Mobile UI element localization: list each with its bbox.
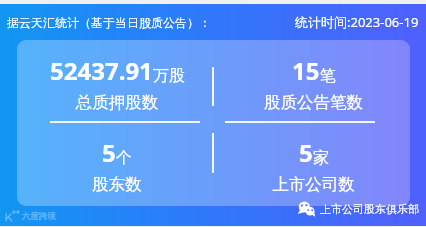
staticText: 52437.91	[50, 54, 153, 87]
other: WeChat	[298, 201, 316, 216]
staticText: 股东数	[19, 174, 215, 195]
staticText: 股质公告笔数	[215, 92, 410, 113]
staticText: 据云天汇统计（基于当日股质公告）：	[7, 15, 211, 30]
button[interactable]: 15	[213, 40, 410, 122]
staticText: 上市公司股东俱乐部	[320, 202, 419, 216]
button[interactable]: 5	[17, 122, 213, 204]
staticText: 笔	[320, 66, 336, 86]
staticText: 总质押股数	[19, 92, 215, 113]
staticText: 统计时间:2023-06-19	[295, 13, 419, 31]
button[interactable]: 5	[213, 122, 410, 204]
staticText: 15	[292, 54, 320, 87]
staticText: 万股	[153, 66, 185, 86]
staticText: 家	[313, 148, 329, 168]
button[interactable]: 52437.91	[17, 40, 213, 122]
staticText: 个	[116, 148, 132, 168]
staticText: 5	[299, 136, 313, 169]
staticText: 5	[102, 136, 116, 169]
button[interactable]: WeChat	[296, 199, 421, 218]
staticText: 六度跨境	[22, 211, 56, 222]
staticText: 上市公司数	[215, 174, 410, 195]
